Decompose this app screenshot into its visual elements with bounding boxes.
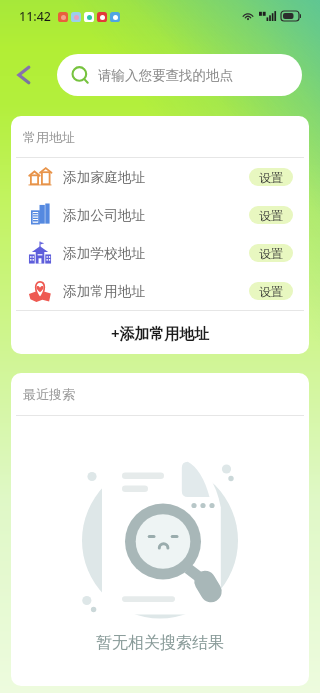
button[interactable]: +添加常用地址 <box>11 311 309 354</box>
staticText: 暂无相关搜索结果 <box>96 633 224 653</box>
staticText: 设置 <box>259 170 283 185</box>
staticText: 11:42 <box>19 8 52 25</box>
button[interactable]: 设置 <box>249 282 293 300</box>
staticText: 请输入您要查找的地点 <box>98 67 233 84</box>
staticText: 设置 <box>259 208 283 223</box>
button[interactable]: 添加家庭地址 <box>11 158 309 196</box>
staticText: 添加学校地址 <box>63 245 146 262</box>
staticText: 添加家庭地址 <box>63 169 146 186</box>
staticText: 设置 <box>259 284 283 299</box>
button[interactable]: 设置 <box>249 168 293 186</box>
button[interactable]: 添加公司地址 <box>11 196 309 234</box>
staticText: 常用地址 <box>23 129 75 145</box>
staticText: 添加公司地址 <box>63 207 146 224</box>
staticText: 最近搜索 <box>23 386 75 402</box>
button[interactable]: 请输入您要查找的地点 <box>57 54 302 96</box>
staticText: 添加常用地址 <box>63 283 146 300</box>
staticText: +添加常用地址 <box>111 323 210 343</box>
button[interactable]: 设置 <box>249 244 293 262</box>
button[interactable]: 添加学校地址 <box>11 234 309 272</box>
button[interactable]: Back <box>9 60 39 90</box>
button[interactable]: 添加常用地址 <box>11 272 309 310</box>
button[interactable]: 设置 <box>249 206 293 224</box>
staticText: 设置 <box>259 246 283 261</box>
